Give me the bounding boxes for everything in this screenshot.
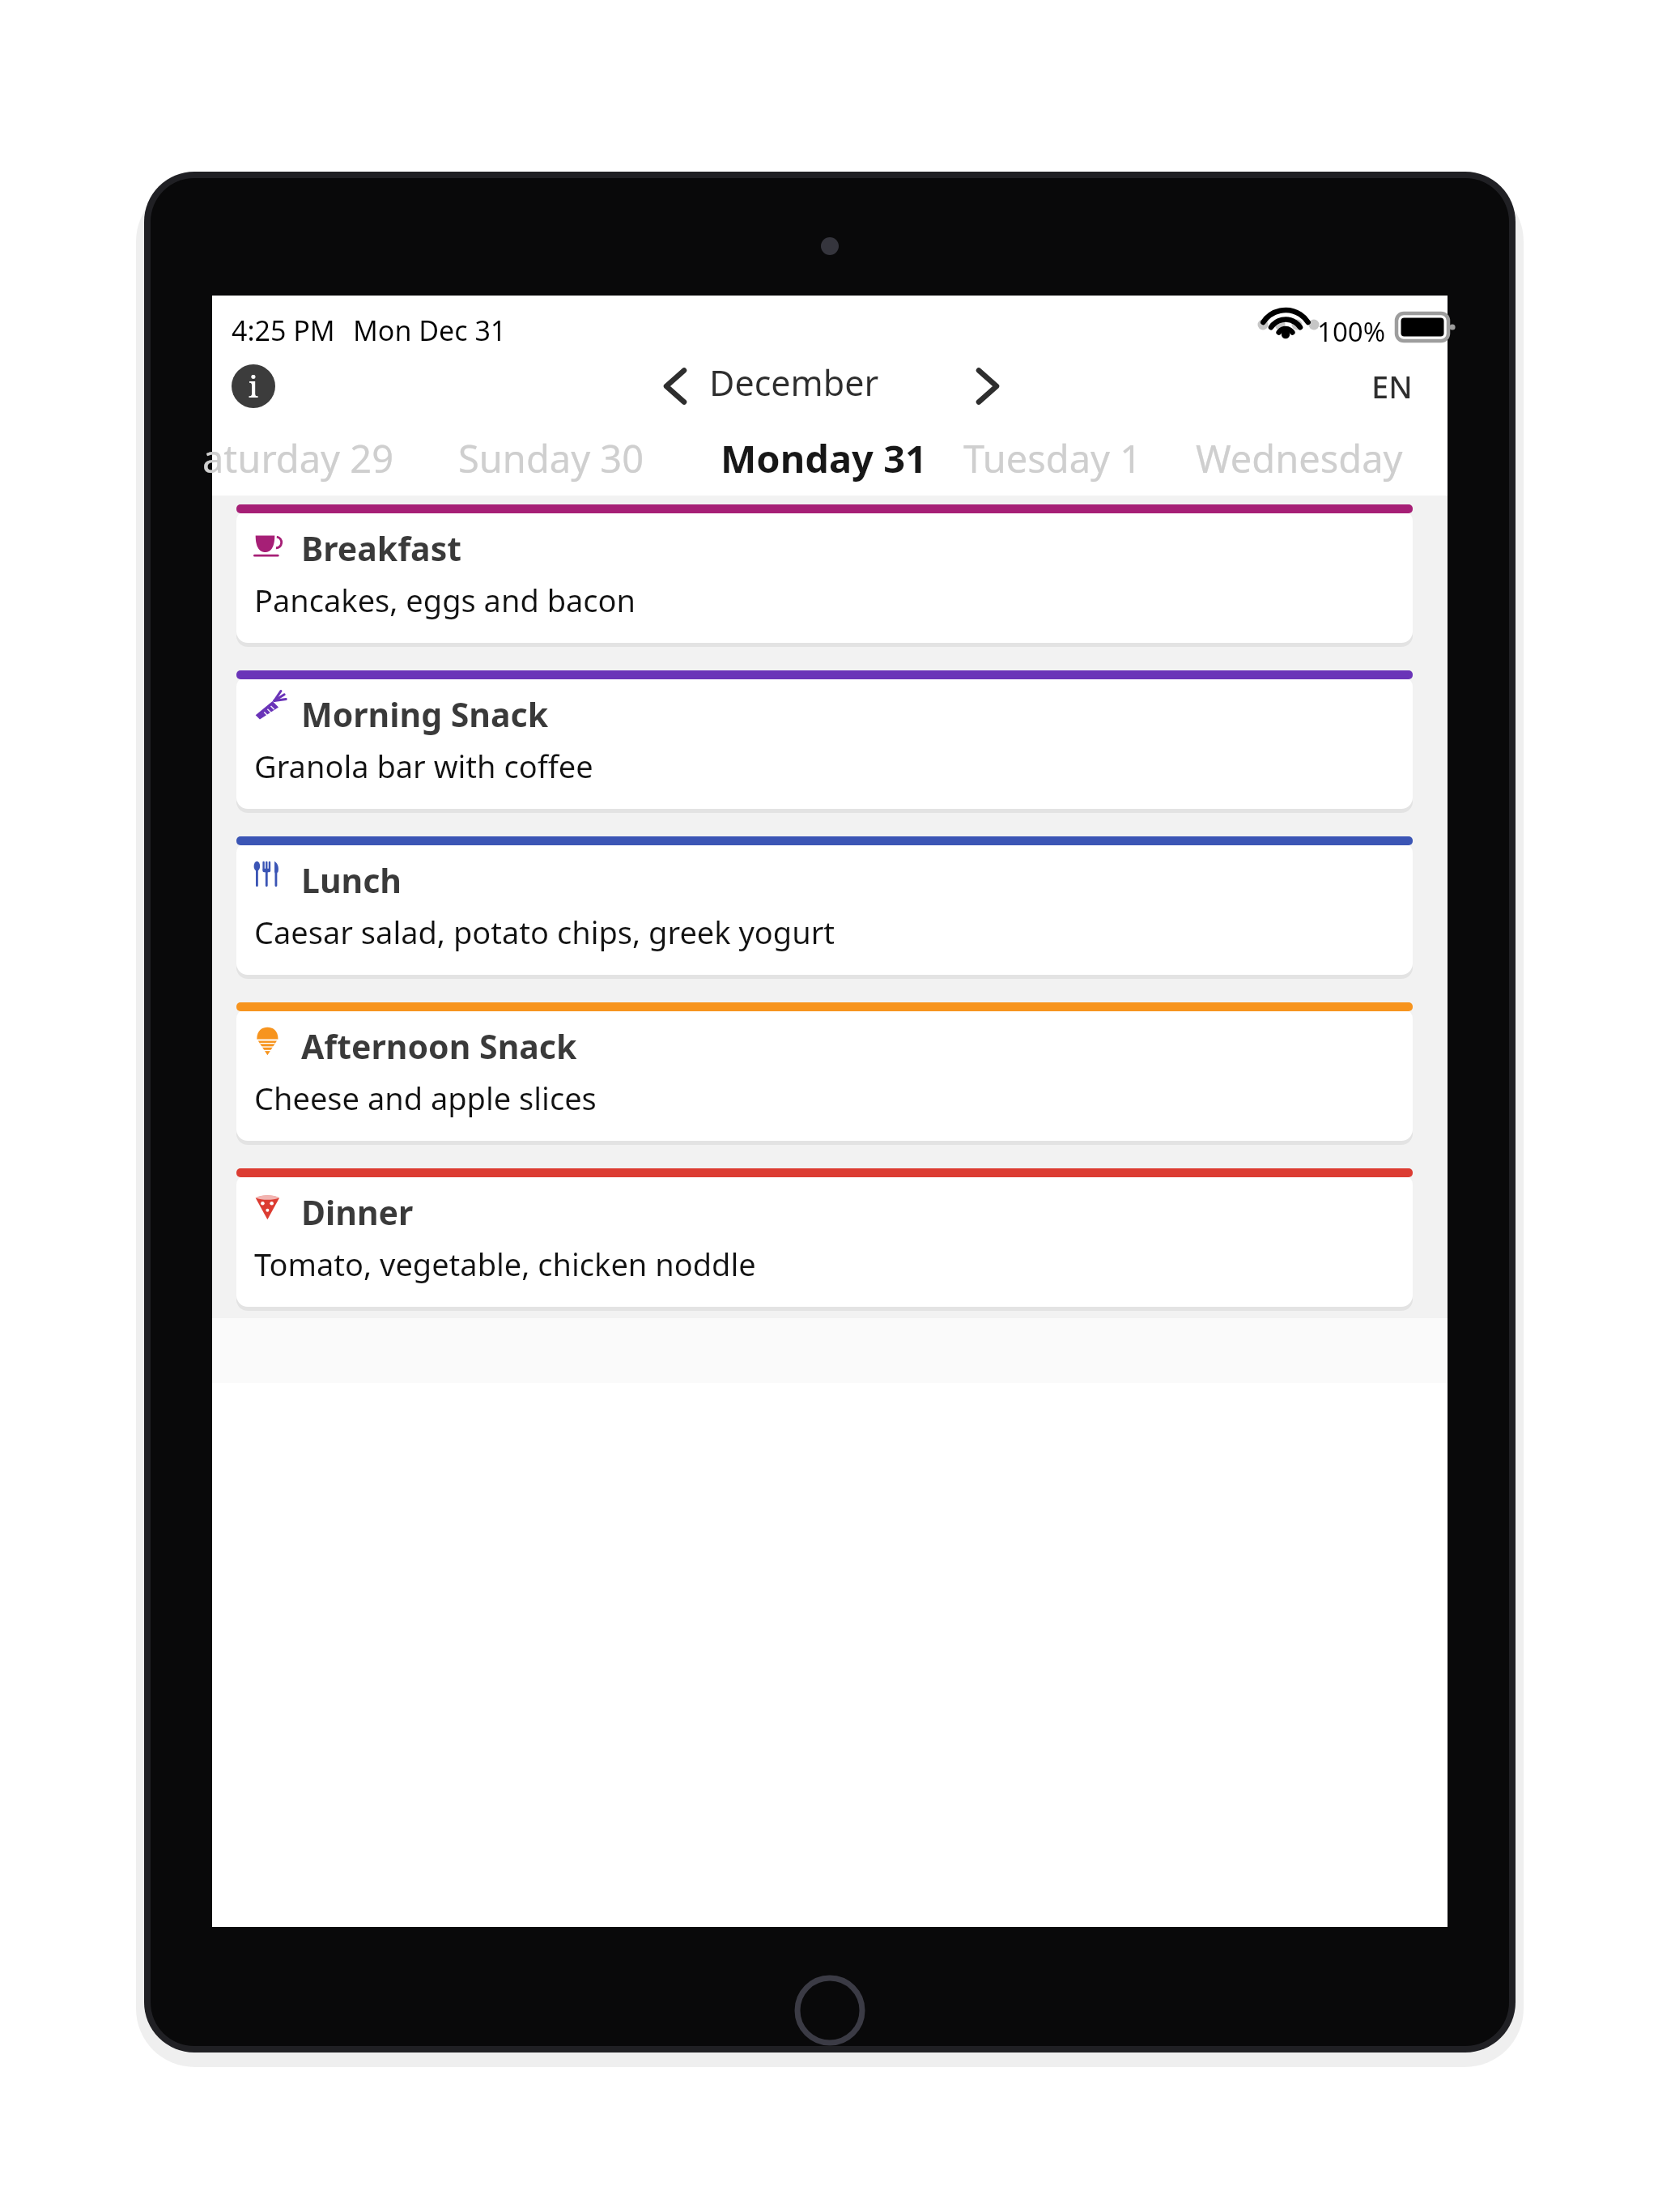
button[interactable]: Afternoon Snack (236, 1008, 1413, 1141)
staticText: Dinner (301, 1189, 414, 1235)
button[interactable]: Sunday 30 (458, 430, 644, 487)
staticText: Tomato, vegetable, chicken noddle (254, 1243, 756, 1285)
staticText: Cheese and apple slices (254, 1077, 597, 1119)
staticText: Tuesday 1 (963, 432, 1142, 484)
staticText: Lunch (301, 857, 402, 903)
button[interactable]: December 2018 (709, 359, 959, 414)
staticText: Mon Dec 31 (353, 312, 507, 349)
staticText: 4:25 PM (232, 312, 335, 349)
button[interactable]: EN (1357, 362, 1426, 410)
button[interactable]: Wednesday (1196, 430, 1403, 487)
staticText: December 2018 (709, 359, 959, 414)
staticText: Wednesday (1196, 432, 1403, 484)
button[interactable]: Dinner (236, 1174, 1413, 1307)
button[interactable]: Morning Snack (236, 676, 1413, 809)
button[interactable]: Breakfast (236, 510, 1413, 643)
button[interactable]: Information (232, 364, 275, 408)
button[interactable]: Lunch (236, 842, 1413, 975)
staticText: Breakfast (301, 525, 462, 571)
button[interactable]: aturday 29 (202, 430, 394, 487)
staticText: EN (1371, 365, 1413, 407)
staticText: Monday 31 (721, 432, 927, 484)
staticText: i (249, 367, 258, 406)
staticText: Pancakes, eggs and bacon (254, 579, 636, 621)
button[interactable]: Next month (959, 357, 1017, 415)
staticText: Afternoon Snack (301, 1023, 577, 1069)
button[interactable]: Previous month (646, 357, 704, 415)
button[interactable]: Monday 31 (721, 430, 927, 487)
staticText: Granola bar with coffee (254, 745, 593, 787)
staticText: Sunday 30 (458, 432, 644, 484)
staticText: Caesar salad, potato chips, greek yogurt (254, 911, 835, 953)
staticText: aturday 29 (202, 432, 394, 484)
staticText: Morning Snack (301, 691, 549, 737)
staticText: 100% (1317, 313, 1386, 350)
button[interactable]: Tuesday 1 (963, 430, 1142, 487)
